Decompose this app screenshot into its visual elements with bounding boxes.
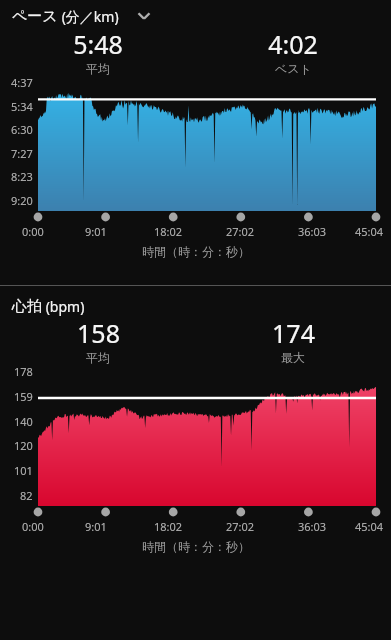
staticText: 時間（時：分：秒） bbox=[142, 244, 250, 259]
staticText: 45:04 bbox=[355, 519, 384, 534]
staticText: 5:48 bbox=[73, 27, 123, 61]
staticText: 159 bbox=[14, 389, 33, 404]
staticText: 158 bbox=[77, 316, 120, 350]
staticText: 7:27 bbox=[11, 146, 33, 161]
staticText: 平均 bbox=[86, 61, 110, 75]
staticText: 18:02 bbox=[154, 519, 183, 534]
staticText: ベスト bbox=[275, 61, 312, 75]
staticText: 最大 bbox=[281, 350, 305, 364]
staticText: 0:00 bbox=[22, 519, 44, 534]
staticText: 心拍 bbox=[12, 297, 42, 316]
staticText: 平均 bbox=[86, 350, 110, 364]
staticText: 0:00 bbox=[22, 224, 44, 239]
button[interactable]: 174 bbox=[195, 316, 391, 364]
button[interactable]: 158 bbox=[0, 316, 196, 364]
staticText: 178 bbox=[14, 364, 33, 379]
button[interactable]: ペース bbox=[0, 0, 391, 27]
staticText: ペース bbox=[12, 7, 58, 26]
staticText: 140 bbox=[14, 414, 33, 429]
staticText: 45:04 bbox=[355, 224, 384, 239]
staticText: 5:34 bbox=[11, 99, 33, 114]
staticText: 18:02 bbox=[154, 224, 183, 239]
staticText: (bpm) bbox=[42, 297, 85, 316]
staticText: 101 bbox=[14, 463, 33, 478]
staticText: 6:30 bbox=[11, 122, 33, 137]
button[interactable]: Change metric bbox=[133, 5, 155, 27]
staticText: 27:02 bbox=[226, 224, 255, 239]
staticText: 174 bbox=[272, 316, 315, 350]
staticText: (分／km) bbox=[58, 7, 119, 26]
button[interactable]: 心拍 bbox=[0, 294, 391, 316]
staticText: 120 bbox=[14, 438, 33, 453]
staticText: 82 bbox=[20, 488, 33, 503]
staticText: 9:01 bbox=[85, 224, 107, 239]
staticText: 9:20 bbox=[11, 193, 33, 208]
staticText: 36:03 bbox=[298, 224, 327, 239]
staticText: 8:23 bbox=[11, 169, 33, 184]
staticText: 27:02 bbox=[226, 519, 255, 534]
button[interactable]: 4:02 bbox=[195, 27, 391, 75]
staticText: 9:01 bbox=[85, 519, 107, 534]
button[interactable]: 5:48 bbox=[0, 27, 196, 75]
staticText: 4:02 bbox=[268, 27, 318, 61]
staticText: 36:03 bbox=[298, 519, 327, 534]
staticText: 4:37 bbox=[11, 75, 33, 90]
staticText: 時間（時：分：秒） bbox=[142, 539, 250, 554]
